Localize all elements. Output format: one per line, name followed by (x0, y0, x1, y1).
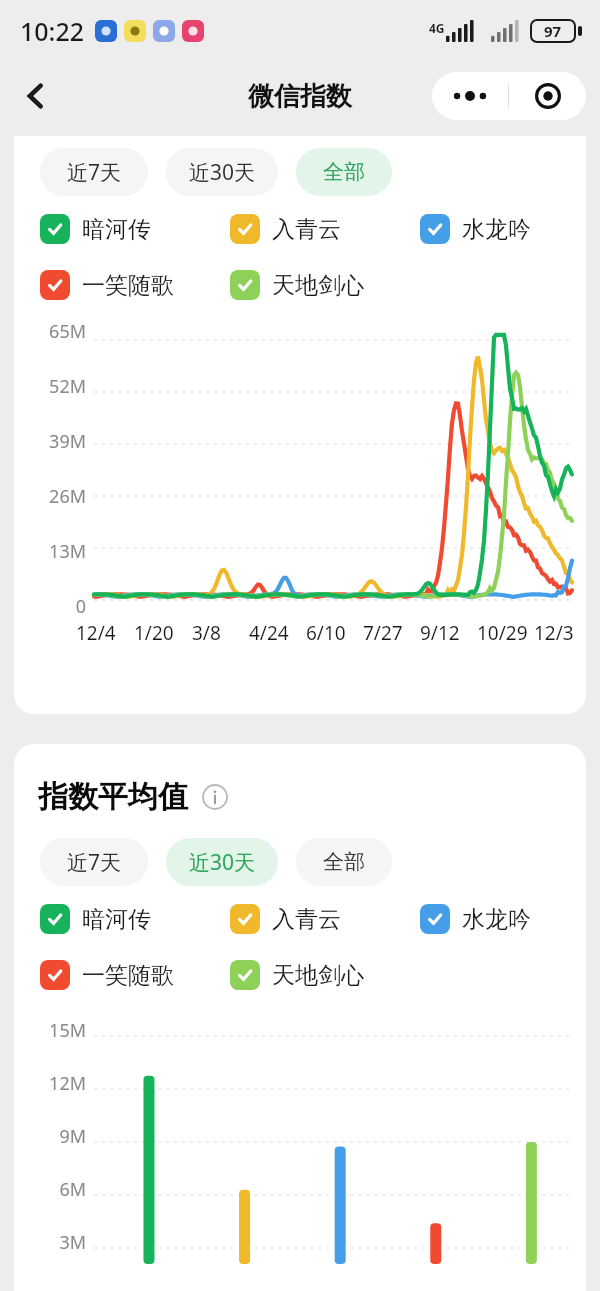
staticText: 一笑随歌 (82, 961, 174, 990)
button[interactable]: 一笑随歌 (40, 270, 230, 300)
button[interactable]: 天地剑心 (230, 960, 420, 990)
staticText: 水龙吟 (462, 905, 531, 934)
button[interactable]: 一笑随歌 (40, 960, 230, 990)
staticText: 52M (22, 374, 86, 396)
staticText: 3/8 (192, 620, 221, 646)
staticText: 10/29 (477, 620, 528, 646)
button[interactable]: 近7天 (40, 838, 148, 886)
staticText: 12/4 (76, 620, 116, 646)
staticText: 近7天 (67, 848, 122, 877)
staticText: 暗河传 (82, 905, 151, 934)
button[interactable]: 水龙吟 (420, 214, 580, 244)
staticText: 全部 (323, 849, 365, 875)
staticText: 入青云 (272, 905, 341, 934)
staticText: 15M (22, 1018, 86, 1038)
button[interactable]: More options (432, 72, 508, 120)
button[interactable]: 近30天 (166, 838, 278, 886)
button[interactable]: Info (200, 782, 230, 812)
staticText: 近30天 (189, 158, 256, 187)
button[interactable]: 全部 (296, 148, 392, 196)
staticText: 天地剑心 (272, 271, 364, 300)
staticText: 6/10 (306, 620, 346, 646)
staticText: 26M (22, 484, 86, 506)
button[interactable]: 入青云 (230, 214, 420, 244)
staticText: 指数平均值 (38, 778, 188, 816)
staticText: 9M (22, 1124, 86, 1144)
staticText: 近7天 (67, 158, 122, 187)
button[interactable]: 暗河传 (40, 214, 230, 244)
staticText: 微信指数 (248, 80, 352, 113)
staticText: 一笑随歌 (82, 271, 174, 300)
button[interactable]: 全部 (296, 838, 392, 886)
staticText: 13M (22, 539, 86, 561)
button[interactable]: 水龙吟 (420, 904, 580, 934)
button[interactable]: Back (10, 70, 62, 122)
staticText: 0 (22, 594, 86, 616)
button[interactable]: Close (509, 72, 586, 120)
staticText: 暗河传 (82, 215, 151, 244)
staticText: 3M (22, 1230, 86, 1250)
button[interactable]: 近7天 (40, 148, 148, 196)
staticText: 6M (22, 1177, 86, 1197)
staticText: 7/27 (363, 620, 403, 646)
staticText: 39M (22, 429, 86, 451)
button[interactable]: 入青云 (230, 904, 420, 934)
staticText: 4G (429, 20, 445, 36)
staticText: 65M (22, 319, 86, 341)
staticText: 近30天 (189, 848, 256, 877)
staticText: 入青云 (272, 215, 341, 244)
staticText: 全部 (323, 159, 365, 185)
staticText: 10:22 (20, 14, 85, 48)
staticText: 天地剑心 (272, 961, 364, 990)
button[interactable]: 天地剑心 (230, 270, 420, 300)
button[interactable]: 近30天 (166, 148, 278, 196)
staticText: 97 (544, 21, 562, 41)
staticText: 12/3 (534, 620, 574, 646)
staticText: 9/12 (420, 620, 460, 646)
button[interactable]: 暗河传 (40, 904, 230, 934)
staticText: 水龙吟 (462, 215, 531, 244)
staticText: 1/20 (134, 620, 174, 646)
staticText: 12M (22, 1071, 86, 1091)
staticText: 4/24 (249, 620, 289, 646)
